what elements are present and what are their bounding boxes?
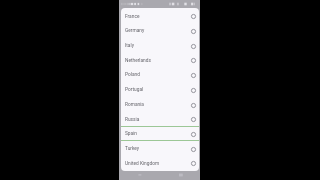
staticText: Portugal	[125, 87, 144, 93]
other: Select Italy	[191, 44, 196, 49]
button[interactable]: Turkey	[121, 141, 199, 156]
staticText: Russia	[125, 117, 140, 123]
other: Select United Kingdom	[191, 161, 196, 166]
button[interactable]: Portugal	[121, 82, 199, 97]
button[interactable]: Romania	[121, 97, 199, 112]
button[interactable]: Germany	[121, 23, 199, 38]
button[interactable]: Poland	[121, 67, 199, 82]
other: Select Poland	[191, 73, 196, 78]
staticText: France	[125, 14, 140, 20]
other: Select Germany	[191, 29, 196, 34]
other: Select France	[191, 14, 196, 19]
staticText: Germany	[125, 28, 145, 34]
staticText: Netherlands	[125, 58, 151, 64]
staticText: United Kingdom	[125, 161, 160, 167]
button[interactable]: Netherlands	[121, 53, 199, 67]
other: Select Spain	[191, 132, 196, 137]
other: Select Netherlands	[191, 58, 196, 63]
button[interactable]: United Kingdom	[121, 156, 199, 170]
button[interactable]: France	[121, 9, 199, 23]
staticText: Romania	[125, 102, 144, 108]
other: Select Russia	[191, 117, 196, 122]
staticText: Italy	[125, 43, 134, 49]
other: Select Portugal	[191, 88, 196, 93]
other: Select Turkey	[191, 147, 196, 152]
button[interactable]: Russia	[121, 112, 199, 126]
button[interactable]: Italy	[121, 38, 199, 53]
other: Select Romania	[191, 103, 196, 108]
staticText: Turkey	[125, 146, 140, 152]
button[interactable]: Spain	[121, 126, 199, 141]
staticText: Poland	[125, 72, 140, 78]
staticText: Spain	[125, 131, 137, 137]
